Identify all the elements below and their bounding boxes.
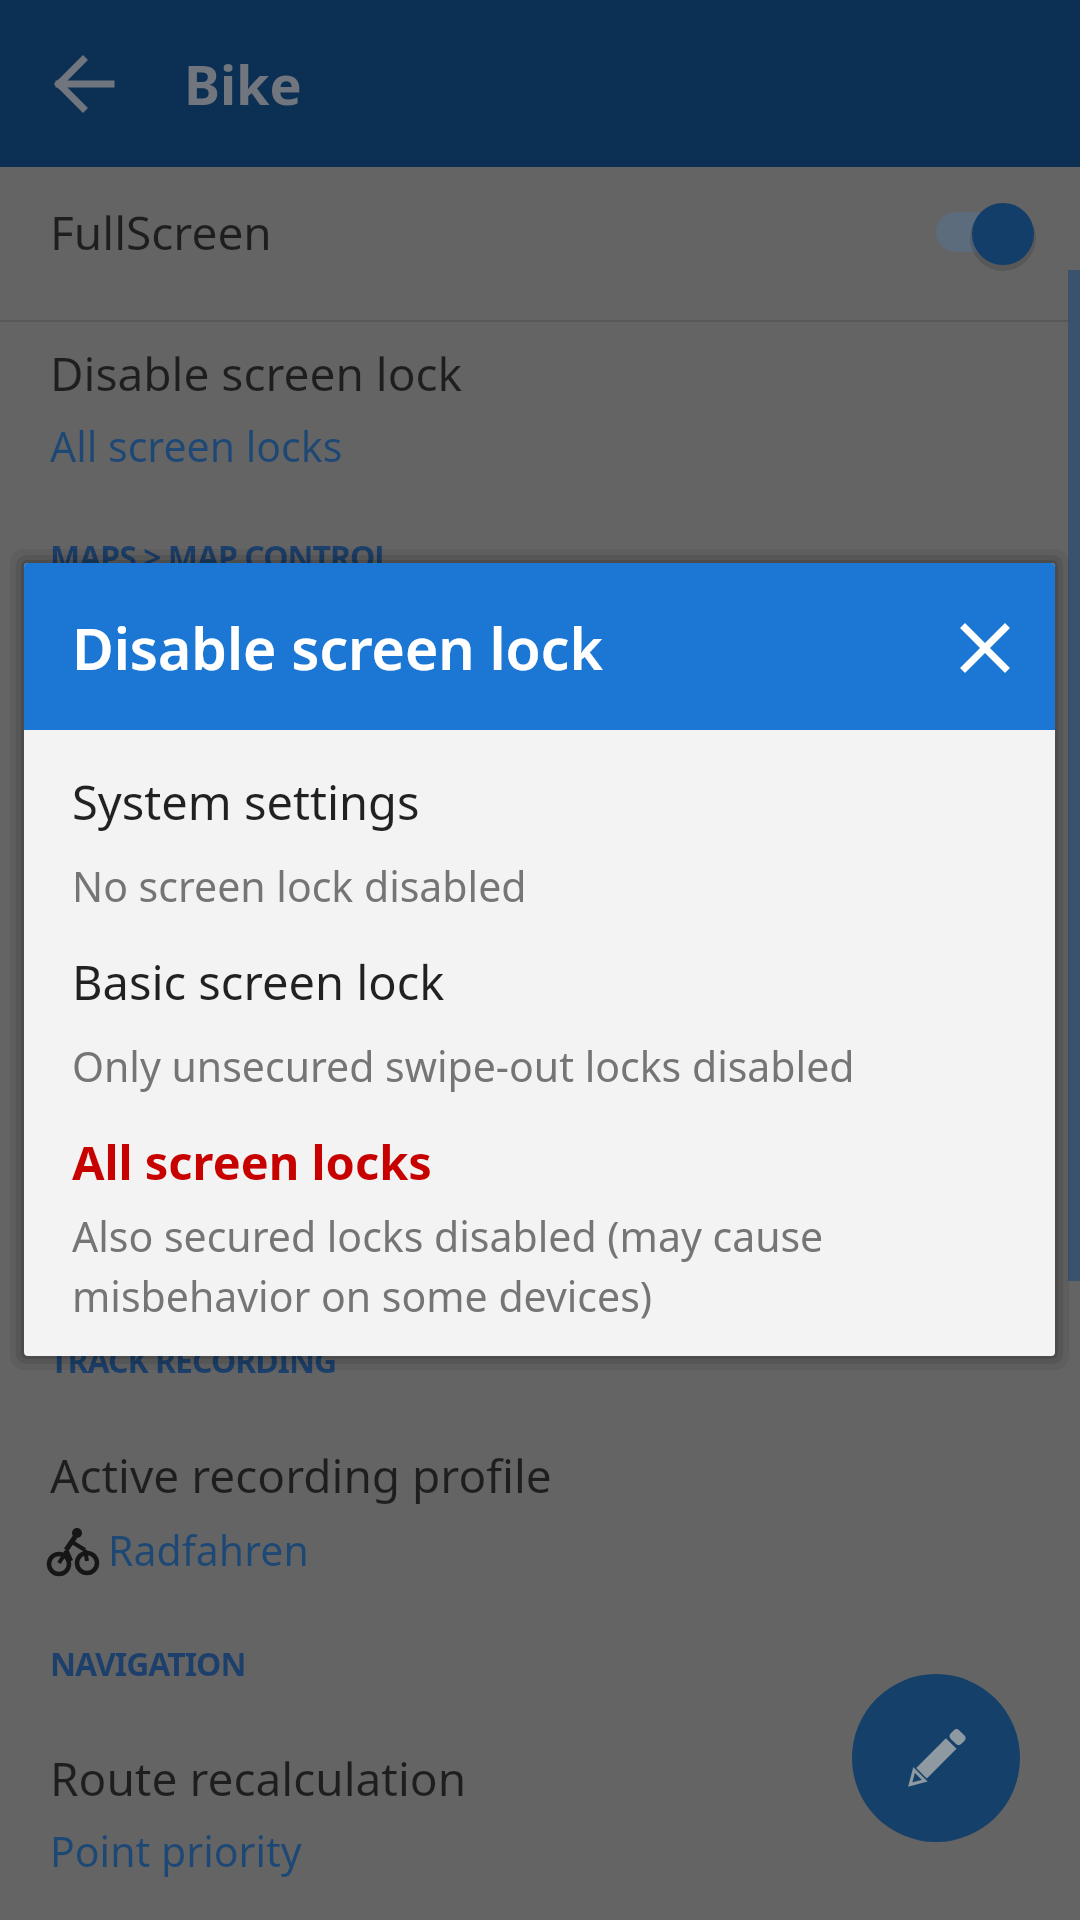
staticText: MAPS > MAP CONTROL xyxy=(50,535,392,579)
staticText: No screen lock disabled xyxy=(72,858,527,914)
staticText: Radfahren xyxy=(108,1522,309,1578)
staticText: Point priority xyxy=(50,1823,302,1879)
staticText: FullScreen xyxy=(50,201,272,264)
staticText: Disable screen lock xyxy=(50,342,463,405)
button[interactable] xyxy=(852,1674,1020,1842)
staticText: Bike xyxy=(184,47,302,121)
button[interactable]: Route recalculation xyxy=(0,1700,1080,1920)
button[interactable]: All screen locks xyxy=(24,1120,1055,1330)
staticText: System settings xyxy=(72,770,420,834)
button[interactable] xyxy=(940,603,1030,693)
staticText: TRACK RECORDING xyxy=(50,1339,337,1383)
staticText: Also secured locks disabled (may cause m… xyxy=(72,1208,824,1324)
staticText: All screen locks xyxy=(50,418,343,474)
button[interactable]: System settings xyxy=(24,760,1055,890)
staticText: Active recording profile xyxy=(50,1444,552,1507)
button[interactable]: Basic screen lock xyxy=(24,940,1055,1070)
staticText: NAVIGATION xyxy=(50,1642,246,1686)
staticText: Disable screen lock xyxy=(72,609,603,687)
button[interactable]: Disable screen lock xyxy=(0,322,1080,527)
staticText: All screen locks xyxy=(72,1130,432,1194)
button[interactable]: FullScreen xyxy=(0,167,1080,320)
button[interactable] xyxy=(40,39,130,129)
button[interactable]: Active recording profile xyxy=(0,1395,1080,1625)
staticText: Basic screen lock xyxy=(72,950,445,1014)
staticText: Route recalculation xyxy=(50,1747,467,1810)
staticText: Only unsecured swipe-out locks disabled xyxy=(72,1038,855,1094)
